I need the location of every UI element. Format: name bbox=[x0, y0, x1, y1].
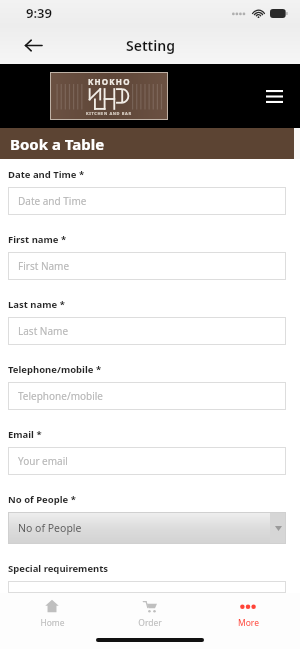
staticText: Date and Time bbox=[18, 194, 87, 208]
staticText: KITCHEN AND BAR bbox=[86, 111, 132, 116]
staticText: KHOKHO bbox=[88, 76, 131, 87]
staticText: No of People * bbox=[8, 493, 76, 506]
staticText: Special requirements bbox=[8, 562, 109, 575]
staticText: Telephone/mobile * bbox=[8, 363, 102, 376]
button[interactable]: Your email bbox=[8, 447, 286, 475]
staticText: Setting bbox=[126, 36, 175, 55]
staticText: No of People bbox=[18, 521, 82, 535]
staticText: Date and Time * bbox=[8, 168, 85, 181]
staticText: Book a Table bbox=[10, 134, 105, 154]
button[interactable]: More bbox=[202, 593, 294, 635]
staticText: First Name bbox=[18, 259, 70, 273]
staticText: Order bbox=[138, 617, 162, 629]
staticText: Email * bbox=[8, 428, 42, 441]
button[interactable]: Date and Time bbox=[8, 187, 286, 215]
button[interactable]: Khokho Kitchen and Bar logo bbox=[50, 72, 168, 120]
staticText: Your email bbox=[18, 454, 68, 468]
button[interactable]: Select number of people bbox=[8, 512, 286, 544]
button[interactable] bbox=[8, 581, 286, 593]
staticText: Telephone/mobile bbox=[18, 389, 103, 403]
button[interactable]: Order bbox=[104, 593, 196, 635]
button[interactable]: First Name bbox=[8, 252, 286, 280]
staticText: Home bbox=[40, 617, 65, 629]
staticText: First name * bbox=[8, 233, 67, 246]
button[interactable]: Menu bbox=[258, 80, 290, 112]
button[interactable]: Home bbox=[6, 593, 98, 635]
button[interactable]: Last Name bbox=[8, 317, 286, 345]
staticText: 9:39 bbox=[26, 4, 52, 22]
staticText: Last name * bbox=[8, 298, 65, 311]
staticText: More bbox=[238, 617, 259, 629]
button[interactable]: Telephone/mobile bbox=[8, 382, 286, 410]
staticText: Last Name bbox=[18, 324, 69, 338]
button[interactable]: Back bbox=[18, 30, 48, 60]
